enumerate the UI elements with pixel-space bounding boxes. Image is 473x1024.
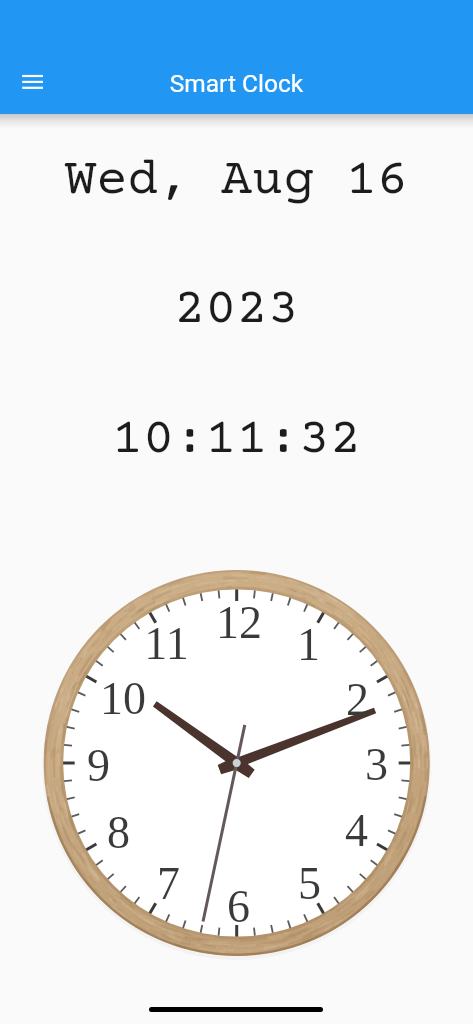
staticText: 4: [345, 805, 368, 856]
staticText: 10:11:32: [0, 411, 473, 469]
staticText: Wed, Aug 16: [0, 152, 473, 210]
staticText: 10: [100, 673, 146, 724]
staticText: 11: [144, 618, 189, 669]
staticText: 2023: [0, 281, 473, 339]
staticText: 8: [107, 807, 130, 858]
staticText: Smart Clock: [0, 69, 473, 98]
staticText: 12: [216, 597, 262, 648]
staticText: 1: [297, 619, 320, 670]
staticText: 7: [157, 858, 180, 909]
staticText: 2: [346, 674, 369, 725]
staticText: 3: [365, 739, 388, 790]
staticText: 6: [227, 881, 250, 932]
button[interactable]: Open navigation menu: [12, 62, 53, 103]
staticText: 5: [298, 858, 321, 909]
staticText: 9: [87, 740, 110, 791]
